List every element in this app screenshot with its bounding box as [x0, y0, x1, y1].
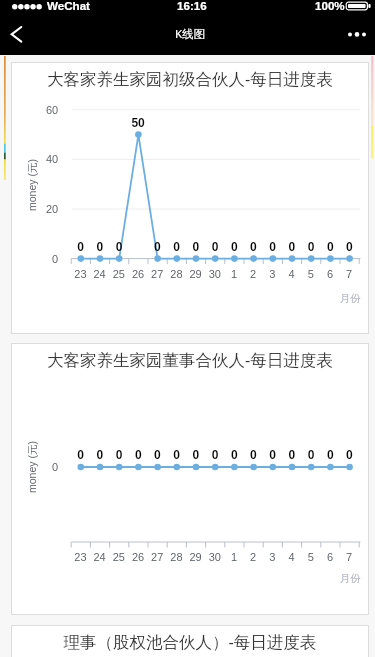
staticText: 100%: [315, 0, 345, 12]
staticText: WeChat: [47, 0, 90, 12]
button[interactable]: [11, 62, 369, 334]
button[interactable]: More options: [337, 21, 375, 55]
staticText: 16:16: [177, 0, 207, 12]
button[interactable]: [11, 625, 369, 657]
staticText: K线图: [175, 26, 206, 42]
button[interactable]: [11, 343, 369, 615]
button[interactable]: Back: [0, 21, 36, 55]
